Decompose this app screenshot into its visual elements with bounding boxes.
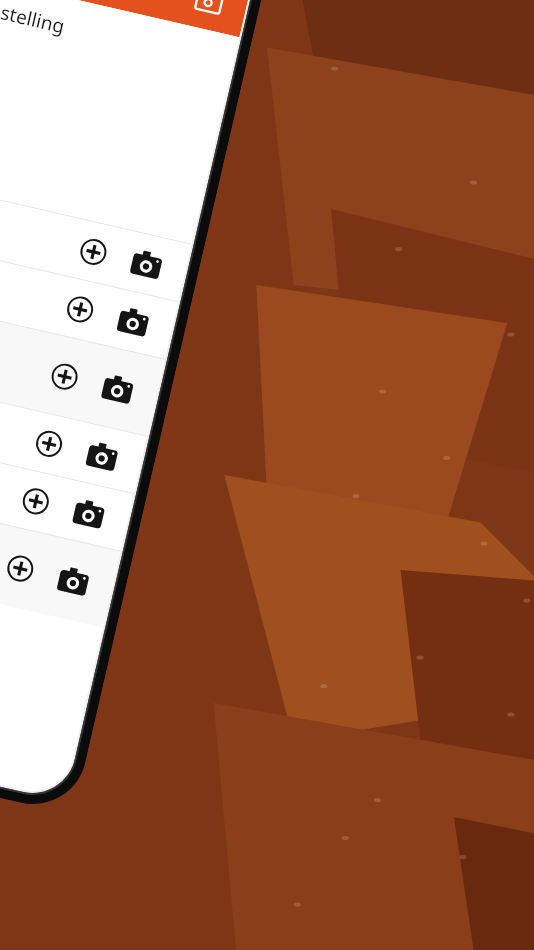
button[interactable]: Take photo [91, 362, 144, 415]
button[interactable]: Add [0, 461, 121, 628]
button[interactable]: Add [54, 283, 106, 336]
button[interactable]: Take photo [106, 295, 159, 348]
button[interactable]: Add [38, 350, 91, 403]
button[interactable]: Take photo [46, 554, 99, 607]
button[interactable]: Take photo [62, 487, 115, 540]
button[interactable]: Take photo [75, 430, 128, 482]
button[interactable]: Take photo [120, 238, 172, 290]
button[interactable]: Add [0, 211, 178, 359]
staticText: Inventarisatie A-stelling [0, 0, 67, 39]
button[interactable]: Add [0, 269, 165, 436]
button[interactable]: Add [0, 346, 147, 493]
button[interactable]: Add [0, 154, 191, 301]
button[interactable]: Add [9, 475, 62, 528]
button[interactable]: Add [0, 403, 134, 551]
button[interactable]: Add [0, 542, 47, 595]
button[interactable]: Save [181, 0, 238, 27]
button[interactable]: Add [23, 417, 75, 470]
button[interactable]: Add [67, 225, 120, 278]
